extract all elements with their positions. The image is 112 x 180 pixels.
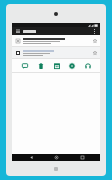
button[interactable]: Select item	[12, 47, 100, 58]
button[interactable]: Select item	[15, 50, 20, 55]
button[interactable]: More options	[91, 28, 97, 34]
button[interactable]: Open navigation drawer	[15, 28, 21, 34]
button[interactable]: Headphones	[82, 60, 93, 72]
button[interactable]: Star message	[92, 38, 97, 43]
button[interactable]: Chat	[19, 60, 30, 72]
button[interactable]: Home	[49, 154, 63, 161]
button[interactable]: Select item	[15, 38, 20, 43]
button[interactable]: Recent apps	[75, 154, 89, 161]
button[interactable]: Calendar	[51, 60, 62, 72]
button[interactable]: Star message	[92, 50, 97, 55]
button[interactable]: Select item	[12, 35, 100, 46]
button[interactable]: Battery	[35, 60, 46, 72]
button[interactable]: Settings	[66, 60, 77, 72]
button[interactable]: Back	[24, 154, 38, 161]
